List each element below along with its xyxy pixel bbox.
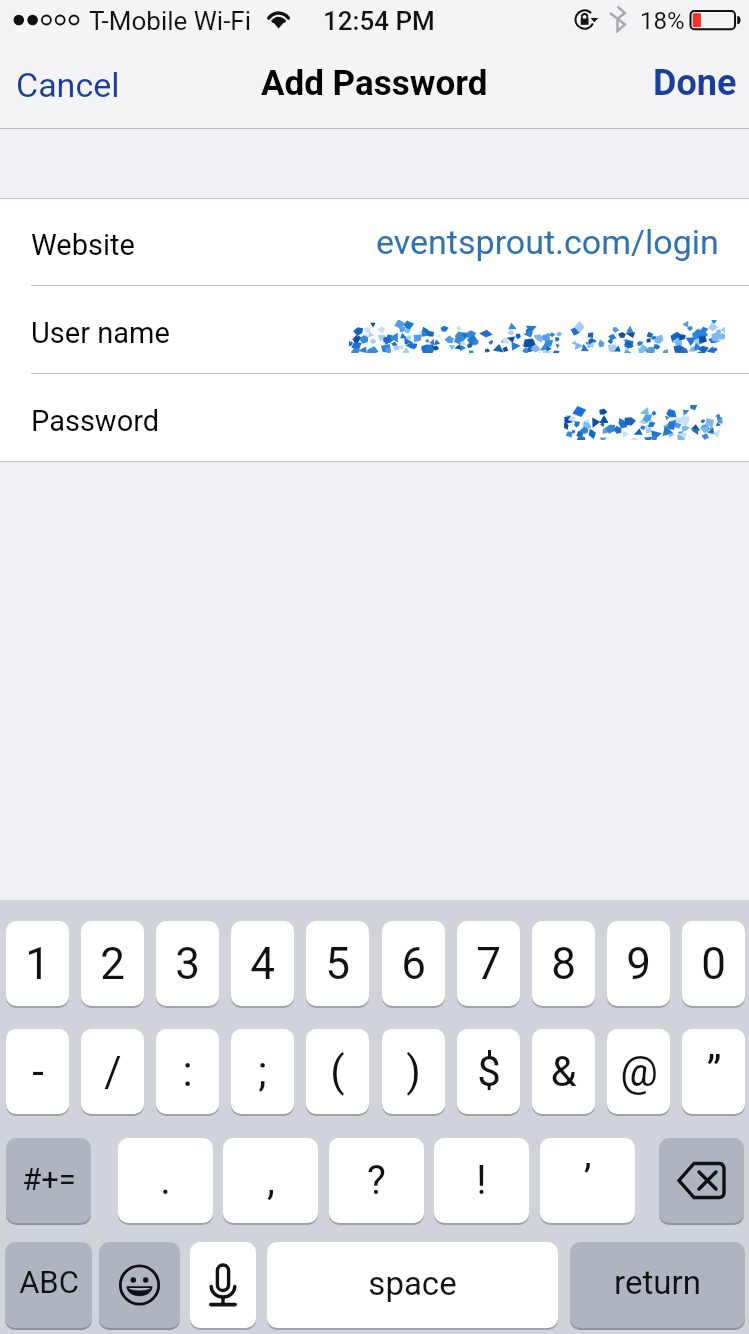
staticText: ; <box>258 1047 267 1096</box>
staticText: ! <box>476 1157 487 1204</box>
staticText: 8 <box>551 938 576 990</box>
staticText: 7 <box>476 938 501 990</box>
button[interactable]: 4 <box>231 921 294 1006</box>
button[interactable]: : <box>156 1029 219 1114</box>
button[interactable]: Cancel <box>16 40 120 129</box>
staticText: 4 <box>250 938 275 990</box>
staticText: Password <box>31 404 160 438</box>
button[interactable]: 5 <box>306 921 369 1006</box>
button[interactable]: Done <box>653 38 737 127</box>
staticText: 1 <box>25 938 50 990</box>
button[interactable]: space <box>267 1242 558 1328</box>
button[interactable]: Emoji <box>99 1242 180 1328</box>
button[interactable]: ( <box>306 1029 369 1114</box>
button[interactable]: / <box>81 1029 144 1114</box>
button[interactable]: ? <box>329 1138 424 1223</box>
button[interactable]: ; <box>231 1029 294 1114</box>
staticText: T-Mobile Wi-Fi <box>89 6 252 36</box>
staticText: 0 <box>701 938 726 990</box>
button[interactable]: 7 <box>457 921 520 1006</box>
button[interactable]: ! <box>434 1138 529 1223</box>
staticText: 18% <box>640 7 685 35</box>
button[interactable]: - <box>6 1029 69 1114</box>
button[interactable]: . <box>118 1138 213 1223</box>
button[interactable]: 8 <box>532 921 595 1006</box>
staticText: Cancel <box>16 65 120 105</box>
staticText: 12:54 PM <box>323 6 435 36</box>
button[interactable]: Dictation <box>190 1242 256 1328</box>
button[interactable]: ABC <box>5 1242 92 1328</box>
staticText: ABC <box>19 1264 79 1300</box>
staticText: 3 <box>175 938 200 990</box>
staticText: Done <box>653 62 737 104</box>
button[interactable]: 6 <box>382 921 445 1006</box>
button[interactable]: Website <box>0 199 749 285</box>
staticText: #+= <box>22 1161 76 1197</box>
button[interactable]: 9 <box>607 921 670 1006</box>
button[interactable]: User name <box>0 286 749 373</box>
button[interactable]: ” <box>682 1029 745 1114</box>
staticText: $ <box>477 1047 501 1096</box>
staticText: ? <box>367 1157 386 1204</box>
staticText: Add Password <box>261 63 488 104</box>
staticText: Website <box>31 228 135 262</box>
button[interactable]: 3 <box>156 921 219 1006</box>
staticText: eventsprout.com/login <box>376 222 719 262</box>
staticText: . <box>160 1157 171 1204</box>
staticText: 5 <box>325 938 350 990</box>
staticText: ) <box>406 1047 421 1096</box>
button[interactable]: 1 <box>6 921 69 1006</box>
button[interactable]: ’ <box>540 1138 635 1223</box>
button[interactable]: , <box>223 1138 318 1223</box>
button[interactable]: $ <box>457 1029 520 1114</box>
staticText: return <box>614 1263 701 1302</box>
button[interactable]: Password <box>0 374 749 461</box>
button[interactable]: & <box>532 1029 595 1114</box>
button[interactable]: Backspace <box>659 1138 744 1223</box>
staticText: : <box>182 1047 193 1096</box>
staticText: ( <box>330 1047 345 1096</box>
staticText: - <box>32 1047 44 1096</box>
button[interactable]: 2 <box>81 921 144 1006</box>
staticText: 2 <box>100 938 125 990</box>
staticText: , <box>267 1157 275 1204</box>
staticText: / <box>104 1047 122 1096</box>
staticText: space <box>368 1264 457 1303</box>
button[interactable]: return <box>570 1242 745 1328</box>
staticText: & <box>550 1047 577 1096</box>
button[interactable]: @ <box>607 1029 670 1114</box>
staticText: User name <box>31 316 170 350</box>
button[interactable]: ) <box>382 1029 445 1114</box>
staticText: ” <box>706 1047 722 1096</box>
staticText: ’ <box>583 1157 592 1204</box>
staticText: 6 <box>401 938 426 990</box>
staticText: 9 <box>626 938 651 990</box>
button[interactable]: #+= <box>6 1138 91 1223</box>
staticText: @ <box>620 1047 658 1096</box>
button[interactable]: 0 <box>682 921 745 1006</box>
